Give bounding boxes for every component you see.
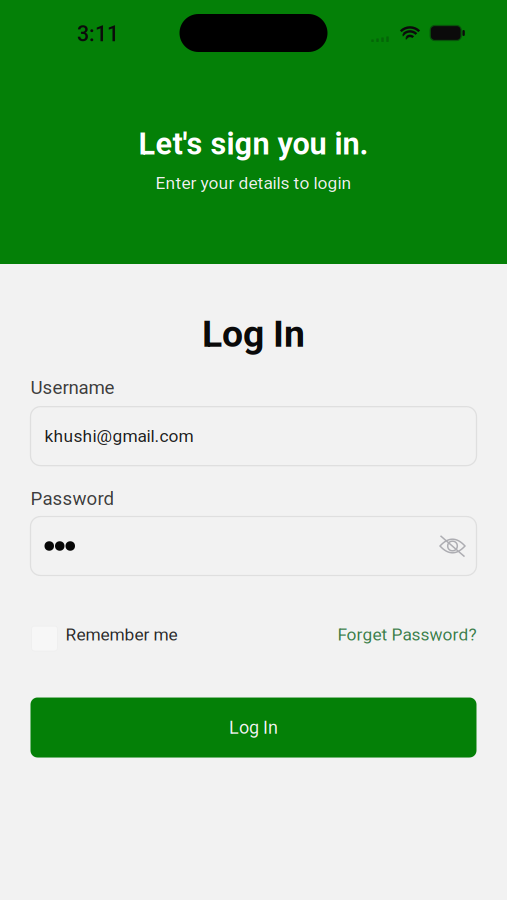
- staticText: Log In: [229, 717, 278, 738]
- button[interactable]: Forget Password?: [337, 624, 476, 645]
- staticText: Username: [30, 377, 114, 399]
- button[interactable]: Log In: [30, 697, 476, 757]
- staticText: Password: [30, 488, 114, 509]
- staticText: 3:11: [77, 21, 119, 46]
- staticText: khushi@gmail.com: [44, 426, 193, 446]
- staticText: Let's sign you in.: [138, 126, 368, 162]
- staticText: Log In: [202, 312, 305, 356]
- button[interactable]: Show password: [430, 524, 474, 568]
- staticText: Remember me: [65, 624, 177, 645]
- staticText: Forget Password?: [337, 624, 476, 645]
- button[interactable]: Remember me: [30, 622, 177, 647]
- staticText: Enter your details to login: [155, 173, 351, 193]
